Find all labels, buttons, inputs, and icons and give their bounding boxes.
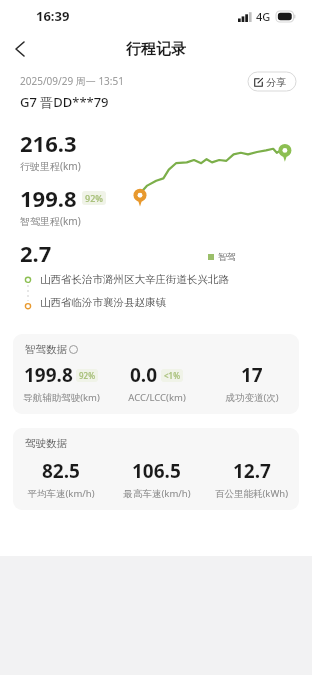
staticText: 199.8 [20,183,77,213]
staticText: ACC/LCC(km) [128,391,186,404]
staticText: 216.3 [20,128,77,158]
staticText: 199.8 [24,362,73,388]
staticText: 92% [85,192,103,204]
staticText: 智驾里程(km) [20,214,81,228]
staticText: 山西省临汾市襄汾县赵康镇 [40,296,166,309]
staticText: 百公里能耗(kWh) [215,487,288,500]
button[interactable]: 驾驶数据 [13,428,299,510]
staticText: <1% [164,370,180,381]
staticText: 2.7 [20,238,52,266]
staticText: 分享 [266,76,286,89]
staticText: 17 [241,362,263,388]
staticText: 平均车速(km/h) [27,487,95,500]
button[interactable]: 分享 [244,72,296,93]
staticText: 12.7 [233,458,271,484]
button[interactable]: Back [0,32,40,66]
staticText: 82.5 [42,458,80,484]
staticText: 0.0 [130,362,158,388]
staticText: 行程记录 [126,40,186,59]
staticText: 智驾 [218,251,236,262]
staticText: 最高车速(km/h) [123,487,191,500]
staticText: G7 晋DD***79 [20,93,109,111]
staticText: 16:39 [36,7,70,25]
staticText: 4G [256,9,271,24]
staticText: 2025/09/29 周一 13:51 [20,74,124,88]
staticText: 导航辅助驾驶(km) [23,391,100,404]
button[interactable]: 智驾数据 [13,334,299,414]
staticText: 成功变道(次) [225,391,279,404]
staticText: 山西省长治市潞州区大辛庄街道长兴北路 [40,273,229,286]
staticText: 行驶里程(km) [20,159,81,173]
staticText: 驾驶数据 [25,437,67,450]
staticText: 智驾数据 [25,343,67,356]
staticText: 92% [79,370,95,381]
staticText: 106.5 [132,458,181,484]
